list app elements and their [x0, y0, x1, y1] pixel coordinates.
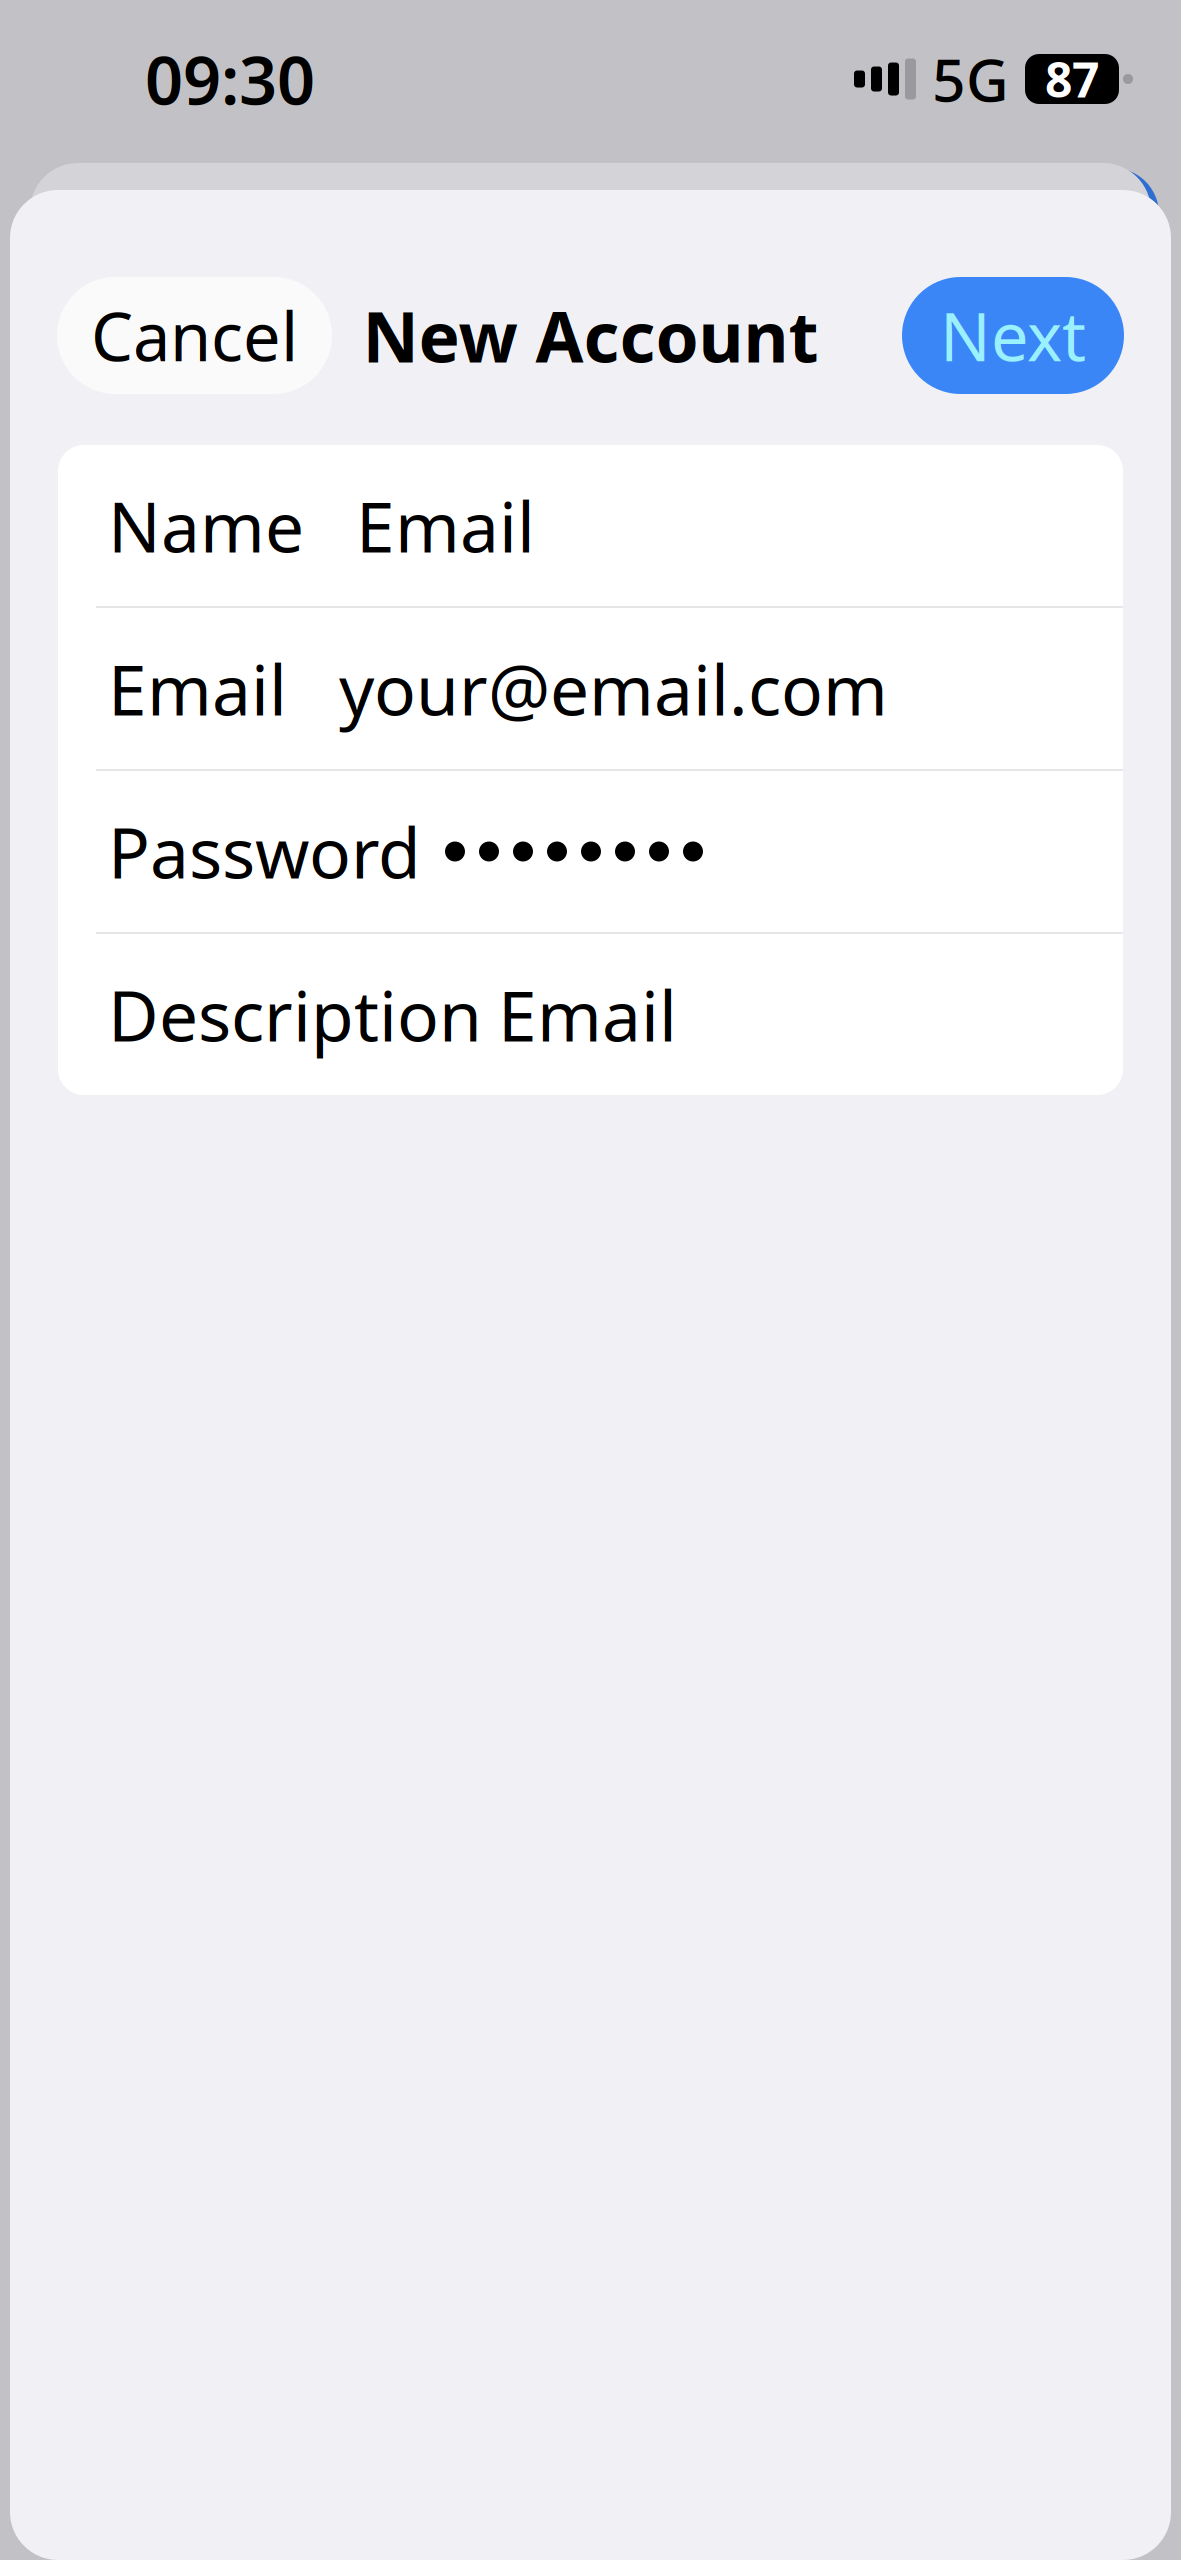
button[interactable]: Name	[58, 445, 1123, 606]
staticText: New Account	[362, 289, 818, 382]
button[interactable]: Password	[58, 771, 1123, 932]
staticText: Cancel	[91, 291, 298, 380]
button[interactable]: Email	[58, 608, 1123, 769]
staticText: your@email.com	[339, 642, 888, 735]
staticText: Email	[108, 642, 287, 735]
button[interactable]: Cancel	[57, 277, 332, 394]
staticText: 09:30	[145, 35, 315, 123]
staticText: 5G	[932, 40, 1009, 118]
button[interactable]: Next	[902, 277, 1124, 394]
staticText: 87	[1045, 47, 1099, 111]
staticText: Email	[356, 479, 535, 572]
staticText: Email	[498, 968, 677, 1061]
button[interactable]: Description	[58, 934, 1123, 1095]
staticText: Name	[108, 479, 304, 572]
staticText: Password	[108, 805, 421, 898]
staticText: Description	[108, 968, 482, 1061]
staticText: Next	[940, 291, 1086, 380]
